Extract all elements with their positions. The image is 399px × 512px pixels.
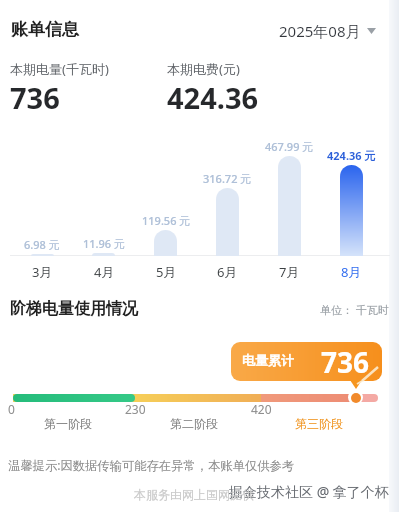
staticText: 230: [125, 401, 146, 417]
staticText: 3月: [32, 263, 53, 281]
staticText: 掘金技术社区 @ 拿了个杯: [229, 482, 389, 501]
staticText: 8月: [341, 263, 362, 281]
staticText: 6月: [217, 263, 238, 281]
button[interactable]: 4月: [74, 263, 134, 281]
staticText: 账单信息: [11, 19, 79, 40]
button[interactable]: 2025年08月: [279, 21, 376, 41]
staticText: 6.98 元: [24, 237, 60, 252]
staticText: 7月: [279, 263, 300, 281]
button[interactable]: 3月: [12, 263, 72, 281]
staticText: 第二阶段: [170, 416, 218, 431]
staticText: 736: [321, 343, 370, 381]
staticText: 第三阶段: [295, 416, 343, 431]
button[interactable]: 6月: [197, 263, 257, 281]
staticText: 第一阶段: [44, 416, 92, 431]
staticText: 4月: [94, 263, 115, 281]
staticText: 316.72 元: [203, 171, 252, 186]
staticText: 温馨提示:因数据传输可能存在异常，本账单仅供参考: [8, 457, 295, 474]
staticText: 467.99 元: [265, 139, 314, 154]
button[interactable]: 电量累计: [231, 342, 382, 381]
button[interactable]: 5月: [136, 263, 196, 281]
staticText: 2025年08月: [279, 21, 361, 41]
staticText: 424.36 元: [327, 148, 376, 163]
button[interactable]: 8月: [321, 263, 381, 281]
staticText: 单位： 千瓦时: [320, 302, 389, 317]
staticText: 本期电费(元): [167, 60, 240, 78]
staticText: 5月: [156, 263, 177, 281]
staticText: 本服务由网上国网提供: [134, 487, 254, 502]
staticText: 420: [251, 401, 272, 417]
staticText: 0: [8, 401, 15, 417]
staticText: 424.36: [167, 78, 259, 117]
staticText: 电量累计: [242, 352, 294, 368]
button[interactable]: 7月: [259, 263, 319, 281]
staticText: 阶梯电量使用情况: [10, 299, 138, 319]
staticText: 119.56 元: [142, 213, 191, 228]
staticText: 11.96 元: [83, 236, 126, 251]
staticText: 本期电量(千瓦时): [10, 60, 109, 78]
staticText: 736: [10, 78, 60, 117]
